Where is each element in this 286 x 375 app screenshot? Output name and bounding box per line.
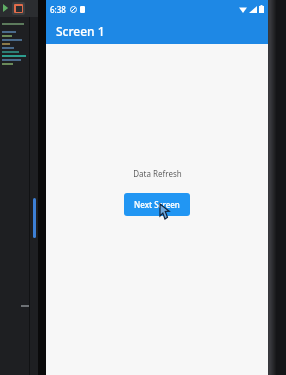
staticText: Screen 1 (56, 23, 105, 39)
staticText: 6:38 (50, 4, 66, 15)
button[interactable]: Next Screen (124, 193, 190, 216)
staticText: Next Screen (134, 199, 180, 210)
other: Pointer (160, 204, 171, 219)
staticText: Data Refresh (133, 168, 182, 179)
